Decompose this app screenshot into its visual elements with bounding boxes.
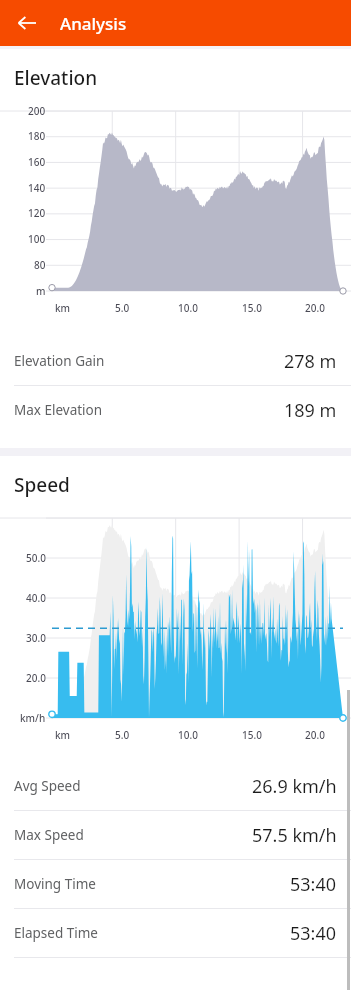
staticText: Avg Speed xyxy=(14,777,81,795)
staticText: 30.0 xyxy=(26,631,46,645)
staticText: 20.0 xyxy=(305,301,325,315)
button[interactable]: Elevation Gain xyxy=(0,337,351,385)
button[interactable]: Moving Time xyxy=(0,860,351,908)
staticText: Elapsed Time xyxy=(14,924,98,942)
staticText: 20.0 xyxy=(305,728,325,742)
staticText: km xyxy=(55,301,71,315)
staticText: Max Speed xyxy=(14,826,84,844)
staticText: 10.0 xyxy=(178,728,198,742)
staticText: 5.0 xyxy=(115,728,130,742)
staticText: 100 xyxy=(28,232,46,246)
staticText: 15.0 xyxy=(242,728,262,742)
button[interactable]: Back xyxy=(8,4,46,42)
staticText: Speed xyxy=(14,472,70,498)
staticText: 53:40 xyxy=(290,872,337,897)
staticText: 10.0 xyxy=(178,301,198,315)
staticText: 160 xyxy=(28,155,46,169)
staticText: 40.0 xyxy=(26,591,46,605)
staticText: 180 xyxy=(28,129,46,143)
staticText: 200 xyxy=(28,104,46,118)
staticText: 20.0 xyxy=(26,671,46,685)
staticText: Max Elevation xyxy=(14,401,103,419)
staticText: 120 xyxy=(28,206,46,220)
button[interactable]: Max Speed xyxy=(0,811,351,859)
button[interactable]: Elapsed Time xyxy=(0,909,351,957)
staticText: 15.0 xyxy=(242,301,262,315)
staticText: 80 xyxy=(34,258,46,272)
staticText: km/h xyxy=(20,711,46,725)
staticText: 278 m xyxy=(284,349,337,374)
staticText: Elevation xyxy=(14,65,98,91)
staticText: 53:40 xyxy=(290,921,337,946)
staticText: 5.0 xyxy=(115,301,130,315)
staticText: km xyxy=(55,728,71,742)
staticText: Analysis xyxy=(60,12,127,35)
staticText: m xyxy=(36,284,46,298)
staticText: 140 xyxy=(28,181,46,195)
staticText: Moving Time xyxy=(14,875,96,893)
staticText: 50.0 xyxy=(26,551,46,565)
staticText: 57.5 km/h xyxy=(252,823,337,848)
button[interactable]: Max Elevation xyxy=(0,386,351,434)
button[interactable]: Avg Speed xyxy=(0,762,351,810)
staticText: 189 m xyxy=(284,398,337,423)
staticText: 26.9 km/h xyxy=(252,774,337,799)
staticText: Elevation Gain xyxy=(14,352,105,370)
